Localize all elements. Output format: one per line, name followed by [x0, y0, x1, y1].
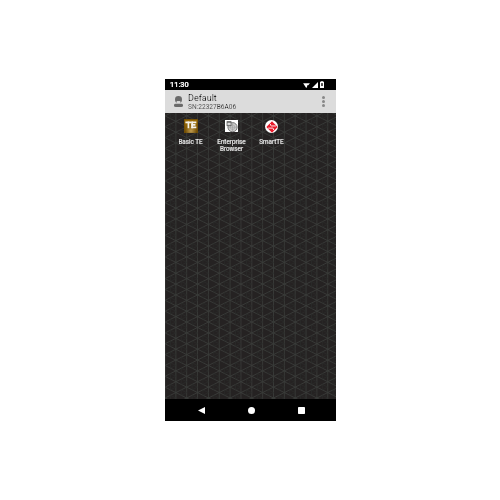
staticText: SN:22327B6A06: [188, 103, 237, 111]
staticText: SmartTE: [259, 138, 284, 145]
button[interactable]: More options: [318, 90, 336, 113]
button[interactable]: Back: [191, 400, 211, 420]
button[interactable]: Basic TE: [170, 119, 211, 145]
staticText: Enterprise Browser: [217, 138, 246, 153]
button[interactable]: Default: [165, 90, 336, 113]
staticText: Basic TE: [178, 138, 203, 145]
button[interactable]: Home: [241, 400, 261, 420]
button[interactable]: Recent apps: [291, 400, 311, 420]
staticText: Default: [188, 93, 217, 104]
button[interactable]: SmartTE: [251, 119, 291, 145]
staticText: 11:30: [170, 80, 189, 89]
button[interactable]: Enterprise Browser: [211, 119, 251, 153]
